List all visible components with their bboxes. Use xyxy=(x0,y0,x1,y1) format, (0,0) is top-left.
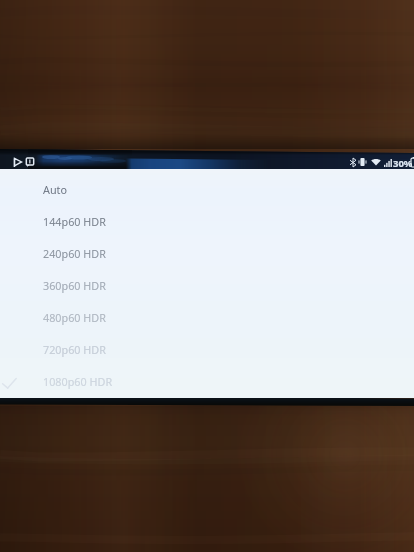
staticText: 720p60 HDR xyxy=(43,342,106,357)
staticText: 144p60 HDR xyxy=(43,214,106,229)
staticText: 240p60 HDR xyxy=(43,246,106,261)
button[interactable]: 360p60 HDR xyxy=(0,269,414,301)
other: Selected xyxy=(1,375,17,391)
button[interactable]: 144p60 HDR xyxy=(0,205,414,237)
staticText: Auto xyxy=(43,182,68,197)
button[interactable]: 720p60 HDR xyxy=(0,333,414,365)
staticText: 30% xyxy=(393,157,413,170)
staticText: 480p60 HDR xyxy=(43,310,106,325)
button[interactable]: 240p60 HDR xyxy=(0,237,414,269)
button[interactable]: Auto xyxy=(0,173,414,205)
button[interactable]: Selected xyxy=(0,365,414,397)
staticText: 360p60 HDR xyxy=(43,278,106,293)
staticText: 1080p60 HDR xyxy=(43,374,113,389)
button[interactable]: 480p60 HDR xyxy=(0,301,414,333)
